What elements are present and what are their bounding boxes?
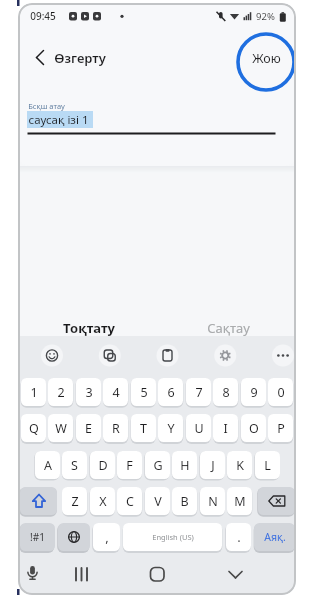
staticText: Тоқтату [63, 319, 115, 337]
staticText: Z [71, 493, 79, 510]
button[interactable] [41, 345, 63, 367]
button[interactable]: Y [158, 414, 183, 442]
staticText: 1 [30, 384, 38, 401]
staticText: !#1 [30, 530, 45, 544]
button[interactable]: Z [62, 487, 87, 515]
button[interactable]: 2 [48, 378, 73, 406]
button[interactable]: N [200, 487, 225, 515]
button[interactable]: !#1 [20, 523, 55, 551]
staticText: V [154, 493, 162, 510]
staticText: N [208, 493, 218, 510]
staticText: W [55, 420, 67, 437]
staticText: Аяқ. [264, 530, 286, 544]
staticText: саусақ ізі 1 [28, 112, 89, 128]
staticText: R [112, 420, 120, 437]
staticText: Өзгерту [54, 49, 106, 67]
button[interactable] [258, 487, 295, 515]
button[interactable]: 1 [21, 378, 46, 406]
button[interactable]: саусақ ізі 1 [28, 111, 188, 128]
staticText: 6 [167, 384, 175, 401]
button[interactable]: X [90, 487, 115, 515]
button[interactable]: Тоқтату [48, 318, 129, 337]
staticText: G [153, 457, 163, 474]
staticText: 5 [140, 384, 148, 401]
staticText: I [223, 420, 228, 437]
button[interactable] [272, 345, 294, 367]
button[interactable]: . [226, 523, 251, 551]
staticText: M [234, 493, 246, 510]
button[interactable]: U [186, 414, 211, 442]
staticText: 9 [250, 384, 258, 401]
staticText: E [85, 420, 92, 437]
staticText: . [237, 528, 241, 546]
button[interactable]: Q [21, 414, 46, 442]
button[interactable]: J [200, 451, 225, 479]
staticText: K [236, 457, 244, 474]
staticText: 4 [112, 384, 120, 401]
button[interactable]: S [62, 451, 87, 479]
button[interactable]: 7 [186, 378, 211, 406]
button[interactable]: 6 [158, 378, 183, 406]
staticText: English (US) [152, 532, 194, 542]
button[interactable] [221, 561, 250, 587]
staticText: Y [167, 420, 175, 437]
button[interactable]: English (US) [123, 523, 222, 551]
button[interactable]: V [145, 487, 170, 515]
button[interactable]: F [117, 451, 142, 479]
button[interactable]: L [255, 451, 280, 479]
button[interactable]: R [103, 414, 128, 442]
staticText: B [180, 493, 189, 510]
button[interactable]: C [117, 487, 142, 515]
staticText: C [126, 493, 134, 510]
button[interactable]: 4 [103, 378, 128, 406]
button[interactable]: 9 [241, 378, 266, 406]
staticText: 09:45 [30, 9, 56, 23]
button[interactable] [18, 43, 54, 73]
button[interactable]: H [172, 451, 197, 479]
button[interactable] [58, 523, 90, 551]
button[interactable]: K [227, 451, 252, 479]
button[interactable]: D [90, 451, 115, 479]
staticText: Жою [252, 50, 281, 67]
button[interactable] [99, 345, 121, 367]
staticText: L [264, 457, 271, 474]
button[interactable]: 8 [213, 378, 238, 406]
staticText: X [99, 493, 107, 510]
staticText: J [211, 457, 215, 474]
staticText: A [44, 457, 52, 474]
staticText: H [180, 457, 190, 474]
button[interactable]: O [241, 414, 266, 442]
button[interactable]: E [76, 414, 101, 442]
button[interactable]: T [131, 414, 156, 442]
button[interactable]: B [172, 487, 197, 515]
staticText: O [249, 420, 259, 437]
button[interactable] [20, 561, 46, 587]
button[interactable]: Аяқ. [254, 523, 295, 551]
button[interactable] [20, 487, 57, 515]
staticText: P [277, 420, 285, 437]
staticText: , [105, 528, 109, 546]
staticText: Бсқш атау [28, 101, 65, 111]
button[interactable]: P [268, 414, 293, 442]
button[interactable]: M [227, 487, 252, 515]
button[interactable] [157, 345, 179, 367]
button[interactable]: , [93, 523, 120, 551]
button[interactable]: 5 [131, 378, 156, 406]
button[interactable] [67, 561, 96, 587]
staticText: U [194, 420, 204, 437]
button[interactable]: 0 [268, 378, 293, 406]
button[interactable]: I [213, 414, 238, 442]
button[interactable]: W [48, 414, 73, 442]
staticText: D [98, 457, 108, 474]
button[interactable]: G [145, 451, 170, 479]
button[interactable] [143, 561, 172, 587]
button[interactable]: Жою [244, 47, 288, 69]
staticText: 8 [222, 384, 230, 401]
button[interactable]: A [35, 451, 60, 479]
button[interactable] [214, 345, 236, 367]
button[interactable]: 3 [76, 378, 101, 406]
staticText: T [140, 420, 147, 437]
staticText: Q [29, 420, 39, 437]
button[interactable]: Сақтау [188, 318, 269, 337]
staticText: 3 [85, 384, 93, 401]
